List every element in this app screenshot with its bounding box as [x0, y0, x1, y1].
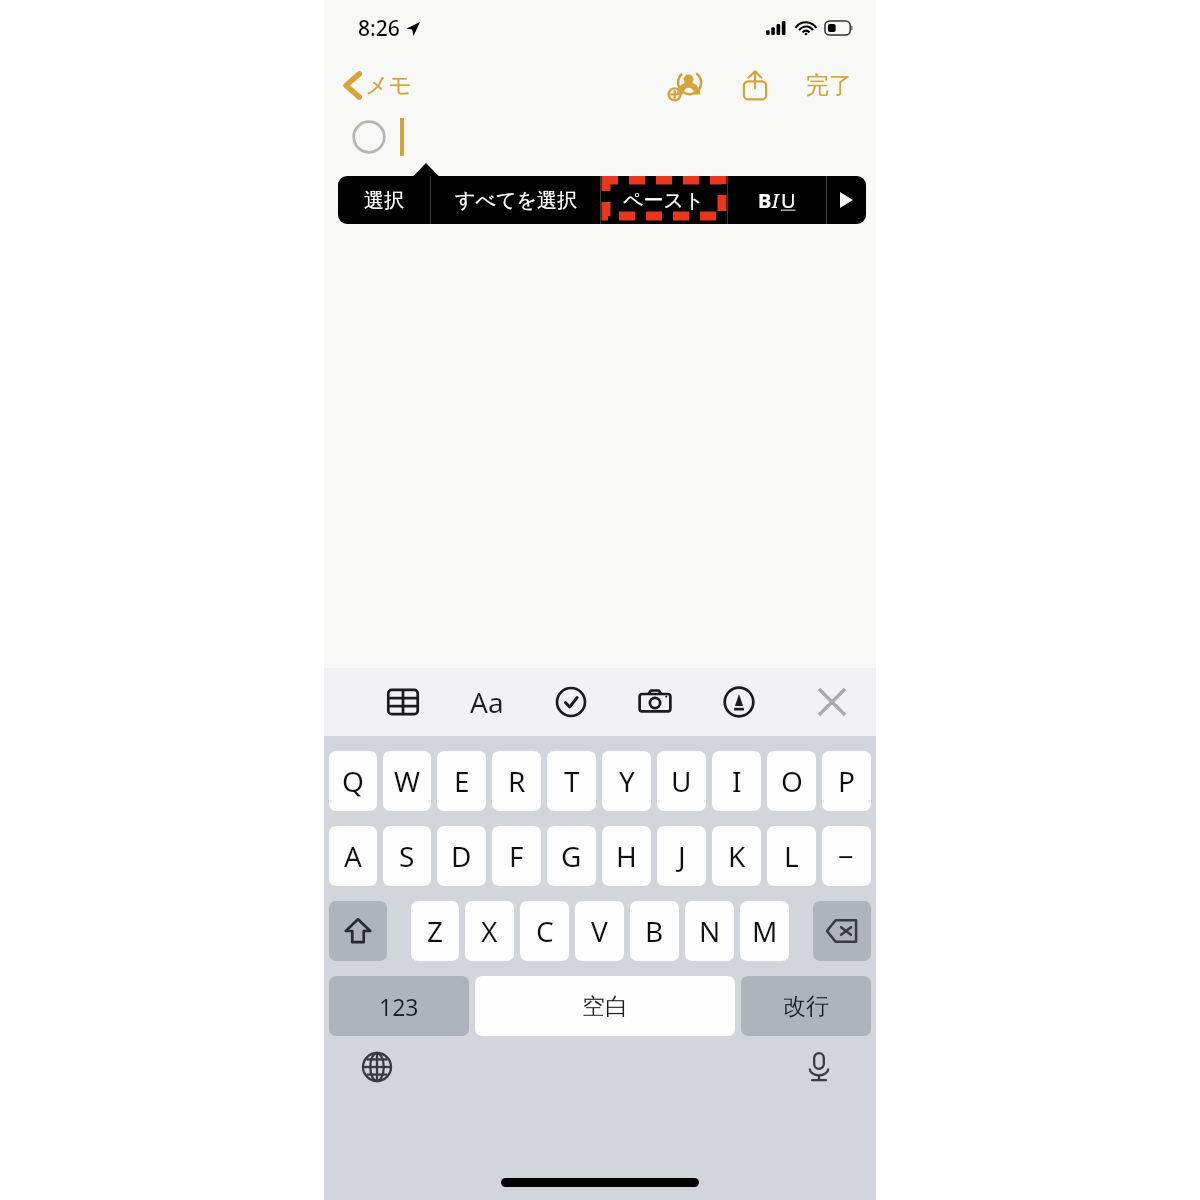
staticText: N: [699, 912, 721, 950]
button[interactable]: ペースト: [601, 176, 727, 224]
button[interactable]: すべてを選択: [431, 176, 600, 224]
button[interactable]: 完了: [798, 65, 860, 106]
button[interactable]: Aa: [464, 679, 510, 725]
button[interactable]: Dictation: [798, 1046, 840, 1088]
button[interactable]: L: [767, 826, 816, 886]
staticText: H: [616, 837, 637, 875]
staticText: メモ: [365, 71, 413, 100]
button[interactable]: P: [822, 751, 871, 811]
staticText: 改行: [783, 992, 829, 1021]
staticText: O: [781, 762, 803, 800]
staticText: Aa: [470, 683, 504, 721]
button[interactable]: 空白: [475, 976, 735, 1036]
button[interactable]: Q: [329, 751, 377, 811]
staticText: 8:26: [358, 14, 400, 43]
button[interactable]: H: [602, 826, 651, 886]
button[interactable]: W: [383, 751, 431, 811]
staticText: U: [671, 762, 692, 800]
button[interactable]: S: [383, 826, 431, 886]
button[interactable]: X: [465, 901, 514, 961]
button[interactable]: Shift: [329, 901, 387, 961]
staticText: P: [838, 762, 855, 800]
button[interactable]: Markup: [716, 679, 762, 725]
button[interactable]: K: [712, 826, 761, 886]
staticText: W: [394, 762, 421, 800]
staticText: F: [509, 837, 524, 875]
button[interactable]: Table: [380, 679, 426, 725]
staticText: D: [451, 837, 472, 875]
staticText: B: [758, 187, 772, 214]
staticText: 完了: [806, 71, 852, 100]
button[interactable]: C: [520, 901, 569, 961]
staticText: C: [536, 912, 554, 950]
button[interactable]: R: [492, 751, 541, 811]
button[interactable]: Close keyboard: [810, 680, 854, 724]
staticText: A: [344, 837, 362, 875]
button[interactable]: U: [657, 751, 706, 811]
button[interactable]: A: [329, 826, 377, 886]
staticText: Z: [427, 912, 444, 950]
button[interactable]: F: [492, 826, 541, 886]
button[interactable]: E: [437, 751, 486, 811]
staticText: I: [732, 762, 742, 800]
staticText: U: [781, 187, 796, 214]
staticText: T: [564, 762, 580, 800]
staticText: R: [508, 762, 526, 800]
button[interactable]: N: [685, 901, 734, 961]
button[interactable]: G: [547, 826, 596, 886]
button[interactable]: 123: [329, 976, 469, 1036]
button[interactable]: V: [575, 901, 624, 961]
button[interactable]: T: [547, 751, 596, 811]
staticText: 空白: [582, 992, 628, 1021]
button[interactable]: Add people: [662, 62, 708, 108]
staticText: E: [454, 762, 470, 800]
button[interactable]: Share: [732, 62, 778, 108]
staticText: Q: [342, 762, 364, 800]
staticText: Y: [619, 762, 635, 800]
button[interactable]: O: [767, 751, 816, 811]
button[interactable]: M: [740, 901, 789, 961]
staticText: K: [728, 837, 746, 875]
button[interactable]: D: [437, 826, 486, 886]
staticText: 選択: [364, 188, 404, 213]
staticText: J: [678, 837, 686, 875]
button[interactable]: メモ: [338, 67, 419, 104]
staticText: B: [645, 912, 664, 950]
button[interactable]: B: [728, 176, 826, 224]
staticText: すべてを選択: [455, 188, 577, 213]
staticText: ペースト: [623, 188, 705, 213]
staticText: S: [399, 837, 415, 875]
button[interactable]: 選択: [338, 176, 430, 224]
button[interactable]: More: [827, 176, 866, 224]
staticText: −: [838, 837, 855, 875]
button[interactable]: Z: [411, 901, 459, 961]
button[interactable]: Change keyboard: [356, 1046, 398, 1088]
staticText: M: [752, 912, 778, 950]
staticText: 123: [379, 991, 419, 1022]
staticText: X: [481, 912, 498, 950]
button[interactable]: J: [657, 826, 706, 886]
staticText: G: [561, 837, 582, 875]
button[interactable]: −: [822, 826, 871, 886]
button[interactable]: Y: [602, 751, 651, 811]
button[interactable]: I: [712, 751, 761, 811]
button[interactable]: B: [630, 901, 679, 961]
button[interactable]: 改行: [741, 976, 871, 1036]
staticText: I: [772, 187, 779, 214]
button[interactable]: Camera: [632, 679, 678, 725]
staticText: V: [591, 912, 608, 950]
staticText: L: [784, 837, 799, 875]
button[interactable]: Delete: [813, 901, 871, 961]
button[interactable]: Checklist: [548, 679, 594, 725]
